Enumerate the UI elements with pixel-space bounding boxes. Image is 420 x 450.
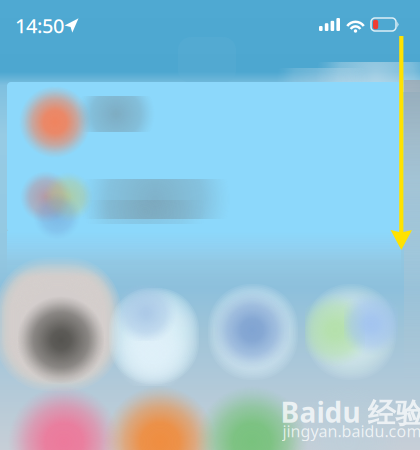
staticText: 14:50	[15, 12, 64, 39]
button[interactable]	[0, 0, 420, 450]
staticText: jingyan.baidu.com	[282, 420, 420, 442]
staticText: Baidu 经验	[280, 393, 420, 431]
